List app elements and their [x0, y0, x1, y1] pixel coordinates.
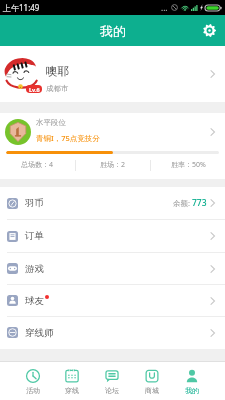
staticText: Lv.6: [29, 86, 40, 93]
button[interactable]: 游戏: [0, 253, 225, 284]
button[interactable]: 论坛: [92, 362, 132, 400]
staticText: 穿线: [65, 386, 79, 395]
button[interactable]: 球友: [0, 285, 225, 316]
button[interactable]: 穿线: [52, 362, 92, 400]
staticText: 我的: [100, 23, 126, 39]
button[interactable]: Lv.6: [0, 46, 225, 102]
staticText: 活动: [26, 386, 40, 395]
staticText: 球友: [25, 295, 44, 307]
button[interactable]: 活动: [13, 362, 52, 400]
staticText: 上午11:49: [3, 2, 40, 13]
staticText: ...: [161, 2, 168, 13]
staticText: 羽币: [25, 197, 44, 209]
button[interactable]: 羽币: [0, 187, 225, 219]
staticText: 胜率：50%: [171, 160, 206, 170]
staticText: 我的: [185, 386, 199, 395]
staticText: 青铜I，75点竞技分: [36, 133, 100, 143]
staticText: 成都市: [46, 84, 69, 93]
button[interactable]: Settings: [194, 15, 225, 46]
button[interactable]: 穿线师: [0, 317, 225, 348]
button[interactable]: 订单: [0, 220, 225, 252]
staticText: 订单: [25, 230, 44, 242]
staticText: 总场数：4: [21, 160, 54, 170]
staticText: 穿线师: [25, 327, 54, 339]
staticText: 胜场：2: [100, 160, 126, 170]
button[interactable]: 我的: [172, 362, 212, 400]
button[interactable]: 商城: [132, 362, 172, 400]
staticText: 余额:: [173, 198, 192, 208]
staticText: 水平段位: [36, 118, 66, 127]
staticText: 773: [192, 197, 207, 209]
staticText: 商城: [145, 386, 159, 395]
staticText: 游戏: [25, 263, 44, 275]
staticText: 噢耶: [46, 64, 69, 78]
button[interactable]: 水平段位: [0, 113, 225, 151]
staticText: 论坛: [105, 386, 119, 395]
